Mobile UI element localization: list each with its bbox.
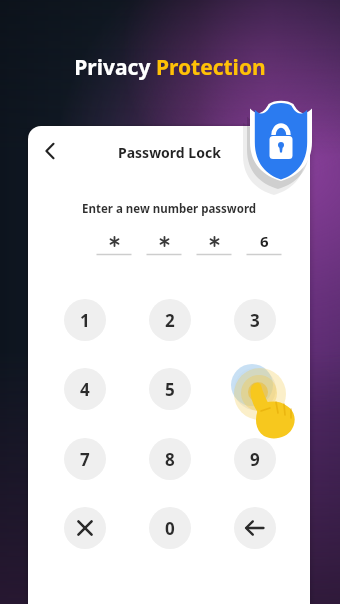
staticText: Enter a new number password [82, 201, 257, 217]
button[interactable]: 4 [64, 368, 106, 410]
staticText: 2 [165, 309, 175, 332]
button[interactable]: 9 [234, 438, 276, 480]
staticText: 8 [165, 448, 175, 471]
button[interactable]: 8 [149, 438, 191, 480]
button[interactable]: 5 [149, 368, 191, 410]
staticText: Privacy Protection [74, 53, 266, 82]
button[interactable]: Clear [64, 507, 106, 549]
staticText: 1 [80, 309, 90, 332]
staticText: 0 [165, 517, 175, 540]
button[interactable]: 3 [234, 299, 276, 341]
staticText: 4 [80, 378, 90, 401]
staticText: 9 [250, 448, 260, 471]
staticText: 5 [165, 378, 175, 401]
staticText: 6 [260, 231, 269, 251]
button[interactable]: 7 [64, 438, 106, 480]
button[interactable]: 2 [149, 299, 191, 341]
button[interactable]: 1 [64, 299, 106, 341]
button[interactable]: 6 [234, 368, 276, 410]
button[interactable]: Backspace [234, 507, 276, 549]
staticText: 3 [250, 309, 260, 332]
staticText: 7 [80, 448, 90, 471]
staticText: Password Lock [118, 143, 221, 162]
button[interactable]: 0 [149, 507, 191, 549]
staticText: 6 [250, 378, 260, 401]
button[interactable]: Back [33, 134, 67, 168]
